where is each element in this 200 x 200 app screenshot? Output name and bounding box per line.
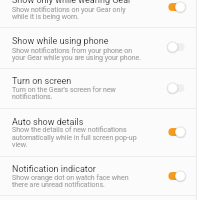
button[interactable]: Turn on screen bbox=[167, 82, 186, 94]
button[interactable]: Auto show details bbox=[167, 126, 186, 138]
staticText: while it is being worn. bbox=[12, 13, 79, 21]
button[interactable]: Notification indicator bbox=[167, 170, 186, 182]
staticText: Show notifications on your Gear only bbox=[12, 6, 126, 14]
button[interactable]: Show while using phone bbox=[167, 41, 186, 53]
staticText: there are unread notifications. bbox=[12, 181, 105, 189]
staticText: notifications. bbox=[12, 93, 53, 101]
staticText: automatically while in full screen pop-u… bbox=[12, 134, 137, 142]
staticText: Show only while wearing Gear bbox=[12, 0, 132, 6]
staticText: Turn on screen bbox=[12, 76, 72, 87]
staticText: Show orange dot on watch face when bbox=[12, 174, 129, 182]
staticText: Notification indicator bbox=[12, 164, 96, 175]
button[interactable] bbox=[0, 0, 200, 27]
staticText: Show notifications from your phone on bbox=[12, 47, 133, 55]
button[interactable] bbox=[0, 28, 200, 68]
staticText: Turn on the Gear's screen for new bbox=[12, 86, 116, 94]
button[interactable] bbox=[0, 157, 200, 195]
button[interactable] bbox=[0, 109, 200, 156]
staticText: Show the details of new notifications bbox=[12, 126, 127, 134]
staticText: view. bbox=[12, 141, 28, 149]
staticText: your Gear while you are using your phone… bbox=[12, 54, 142, 62]
button[interactable]: Show only while wearing Gear bbox=[167, 1, 186, 13]
staticText: Auto show details bbox=[12, 117, 84, 128]
staticText: Show while using phone bbox=[12, 36, 109, 47]
button[interactable] bbox=[0, 69, 200, 108]
